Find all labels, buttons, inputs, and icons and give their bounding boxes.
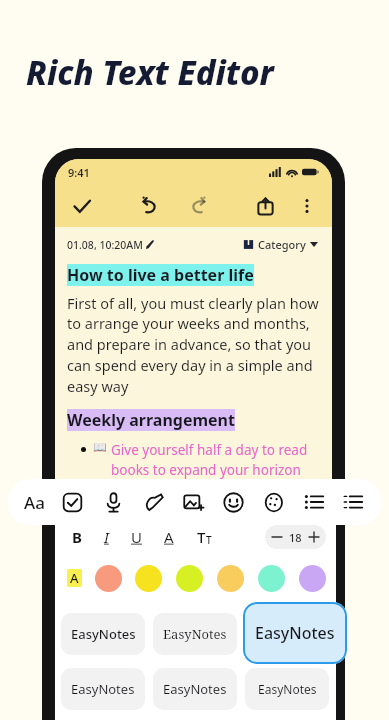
button[interactable]: Emoji	[219, 488, 248, 517]
staticText: A	[70, 569, 79, 587]
button[interactable]: Color 1	[95, 565, 122, 592]
staticText: How to live a better life	[67, 264, 254, 286]
button[interactable]: Numbered list	[339, 488, 367, 516]
button[interactable]: T	[195, 525, 214, 549]
staticText: A	[164, 527, 174, 547]
staticText: EasyNotes	[71, 680, 135, 698]
button[interactable]: Bulleted list	[300, 488, 328, 516]
button[interactable]: Color 2	[135, 565, 162, 592]
button[interactable]: Color 3	[176, 565, 203, 592]
button[interactable]: Color 4	[217, 565, 244, 592]
staticText: Rich Text Editor	[26, 50, 274, 95]
button[interactable]: Checklist	[58, 488, 87, 517]
staticText: EasyNotes	[163, 625, 227, 643]
staticText: Category	[258, 237, 306, 252]
staticText: EasyNotes	[71, 625, 136, 643]
button[interactable]: Aa	[22, 491, 47, 514]
staticText: One day shopping with family	[111, 487, 301, 505]
button[interactable]: EasyNotes	[153, 668, 237, 710]
button[interactable]: I	[101, 527, 112, 547]
button[interactable]: Color palette	[260, 488, 289, 517]
staticText: T	[197, 527, 206, 547]
button[interactable]: B	[69, 527, 85, 547]
button[interactable]: Color 6	[299, 565, 326, 592]
button[interactable]: Decrease font size	[265, 525, 289, 549]
button[interactable]: Save	[67, 191, 97, 221]
button[interactable]: Share	[251, 192, 280, 221]
staticText: 9:41	[68, 165, 90, 180]
staticText: 01.08, 10:20AM	[67, 238, 143, 252]
button[interactable]: Redo	[185, 191, 215, 221]
staticText: Give yourself half a day to read books t…	[111, 441, 320, 479]
button[interactable]: Category	[241, 235, 320, 254]
staticText: U	[131, 527, 142, 547]
button[interactable]: EasyNotes	[61, 613, 145, 655]
button[interactable]: U	[128, 527, 145, 547]
button[interactable]: Increase font size	[302, 525, 326, 549]
staticText: Weekly arrangement	[67, 409, 235, 431]
button[interactable]: Color 5	[258, 565, 285, 592]
button[interactable]: Voice input	[99, 488, 128, 517]
staticText: T	[206, 533, 212, 547]
button[interactable]: Highlight color	[67, 569, 82, 587]
staticText: EasyNotes	[255, 622, 335, 644]
staticText: First of all, you must clearly plan how …	[67, 293, 320, 397]
staticText: EasyNotes	[163, 680, 227, 698]
button[interactable]: EasyNotes	[245, 668, 329, 710]
button[interactable]: EasyNotes	[243, 602, 347, 664]
staticText: I	[104, 527, 109, 547]
button[interactable]: Insert image	[179, 488, 208, 517]
button[interactable]: More options	[294, 193, 320, 219]
button[interactable]: Undo	[133, 191, 163, 221]
button[interactable]: A	[161, 527, 177, 547]
staticText: Aa	[24, 491, 45, 514]
staticText: B	[72, 527, 82, 547]
button[interactable]: EasyNotes	[61, 668, 145, 710]
staticText: 📖	[93, 441, 107, 454]
button[interactable]: Draw	[139, 488, 168, 517]
staticText: 18	[289, 530, 302, 545]
button[interactable]: EasyNotes	[153, 613, 237, 655]
staticText: EasyNotes	[258, 681, 317, 697]
